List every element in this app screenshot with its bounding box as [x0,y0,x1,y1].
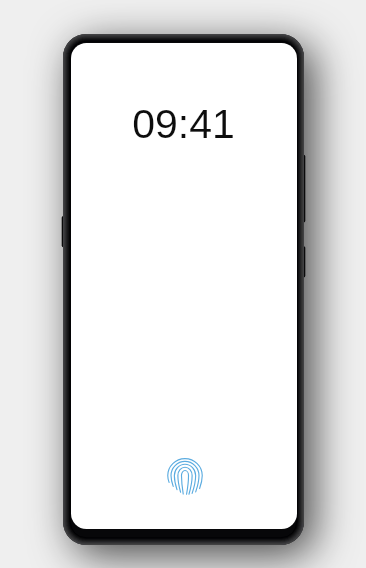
staticText: 09:41 [132,101,235,147]
button[interactable]: Unlock with fingerprint [163,454,207,498]
